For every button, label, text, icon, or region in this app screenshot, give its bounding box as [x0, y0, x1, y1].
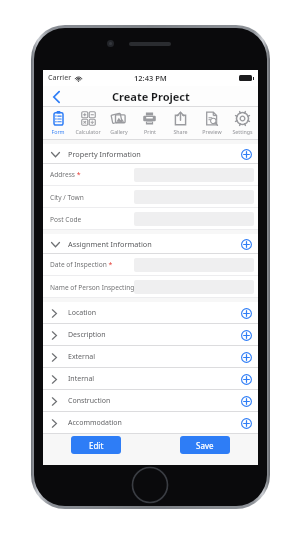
staticText: Calculator	[75, 128, 101, 135]
staticText: Internal	[68, 374, 95, 384]
staticText: Location	[68, 308, 97, 318]
button[interactable]: External	[43, 346, 258, 368]
button[interactable]: Name of Person Inspecting	[43, 276, 258, 298]
staticText: Property Information	[68, 149, 141, 159]
button[interactable]: Add Property Information	[239, 147, 253, 161]
button[interactable]: Back	[43, 86, 69, 107]
button[interactable]: Construction	[43, 390, 258, 412]
staticText: Print	[144, 128, 156, 135]
button[interactable]: Form	[43, 107, 73, 140]
button[interactable]: Share	[165, 107, 196, 140]
staticText: City / Town	[50, 193, 84, 202]
button[interactable]: Location	[43, 302, 258, 324]
button[interactable]: Home	[130, 465, 170, 505]
button[interactable]: Add Location	[239, 306, 253, 320]
staticText: Carrier	[48, 73, 72, 83]
button[interactable]: Add Assignment Information	[239, 237, 253, 251]
button[interactable]: Property Information	[43, 144, 258, 164]
staticText: Name of Person Inspecting	[50, 283, 135, 292]
staticText: External	[68, 352, 96, 362]
staticText: Settings	[232, 128, 253, 135]
staticText: Address *	[50, 170, 81, 180]
button[interactable]: Add Internal	[239, 372, 253, 386]
button[interactable]: Add External	[239, 350, 253, 364]
staticText: Assignment Information	[68, 239, 152, 249]
staticText: Accommodation	[68, 418, 122, 428]
button[interactable]: Add Construction	[239, 394, 253, 408]
button[interactable]: Assignment Information	[43, 234, 258, 254]
button[interactable]: Post Code	[43, 208, 258, 230]
button[interactable]: Date of Inspection *	[43, 254, 258, 276]
button[interactable]: Edit	[71, 436, 121, 454]
button[interactable]: Settings	[227, 107, 258, 140]
staticText: Gallery	[110, 128, 128, 135]
button[interactable]: Internal	[43, 368, 258, 390]
staticText: Preview	[202, 128, 222, 135]
button[interactable]: City / Town	[43, 186, 258, 208]
staticText: Edit	[89, 440, 104, 451]
staticText: Post Code	[50, 215, 82, 224]
staticText: Date of Inspection *	[50, 260, 113, 270]
staticText: Description	[68, 330, 106, 340]
button[interactable]: Print	[134, 107, 165, 140]
button[interactable]: Accommodation	[43, 412, 258, 434]
staticText: Form	[51, 128, 65, 135]
staticText: Save	[196, 440, 214, 451]
button[interactable]: Description	[43, 324, 258, 346]
button[interactable]: Add Description	[239, 328, 253, 342]
staticText: Construction	[68, 396, 111, 406]
staticText: Share	[173, 128, 188, 135]
staticText: Create Project	[112, 89, 190, 104]
button[interactable]: Preview	[196, 107, 227, 140]
button[interactable]: Calculator	[73, 107, 103, 140]
button[interactable]: Gallery	[103, 107, 134, 140]
button[interactable]: Address *	[43, 164, 258, 186]
button[interactable]: Save	[180, 436, 230, 454]
staticText: 12:43 PM	[134, 73, 167, 83]
button[interactable]: Add Accommodation	[239, 416, 253, 430]
